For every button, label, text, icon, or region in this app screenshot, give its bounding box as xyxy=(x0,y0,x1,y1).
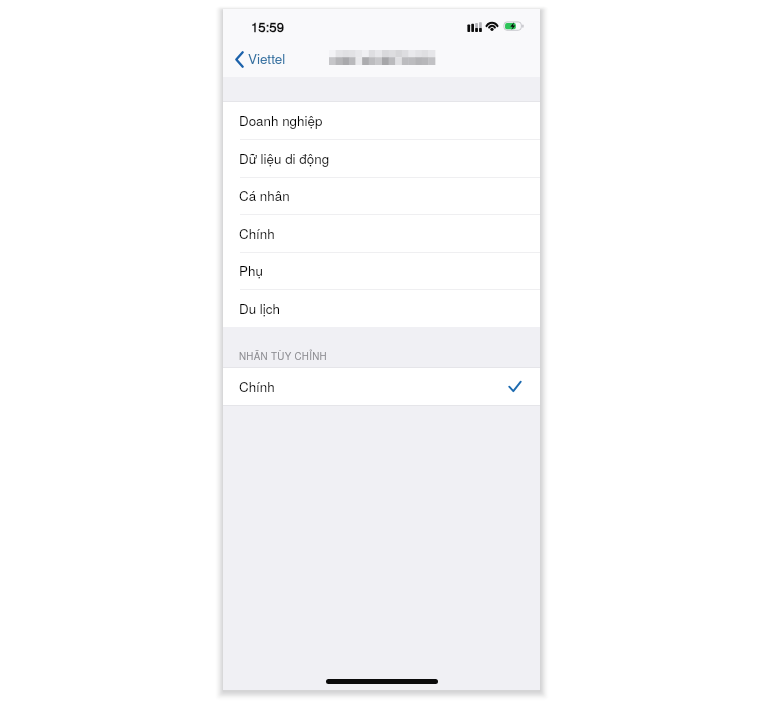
staticText: Doanh nghiệp xyxy=(239,111,323,130)
button[interactable]: Dữ liệu di động xyxy=(223,139,540,177)
button[interactable]: Cá nhân xyxy=(223,177,540,214)
button[interactable]: Doanh nghiệp xyxy=(223,102,540,139)
staticText: Cá nhân xyxy=(239,186,290,205)
other: Back xyxy=(235,51,244,68)
staticText: Chính xyxy=(239,224,275,243)
staticText: Dữ liệu di động xyxy=(239,149,330,168)
button[interactable]: Du lịch xyxy=(223,289,540,327)
staticText: 15:59 xyxy=(251,17,284,36)
staticText: Chính xyxy=(239,377,275,396)
button[interactable]: Phụ xyxy=(223,252,540,289)
button[interactable]: Chính xyxy=(223,214,540,252)
staticText: Phụ xyxy=(239,261,263,280)
button[interactable]: Chính xyxy=(223,368,540,405)
staticText: Viettel xyxy=(248,49,286,68)
staticText: Du lịch xyxy=(239,299,280,318)
staticText: NHÃN TÙY CHỈNH xyxy=(239,349,327,363)
button[interactable]: Back xyxy=(233,50,288,69)
